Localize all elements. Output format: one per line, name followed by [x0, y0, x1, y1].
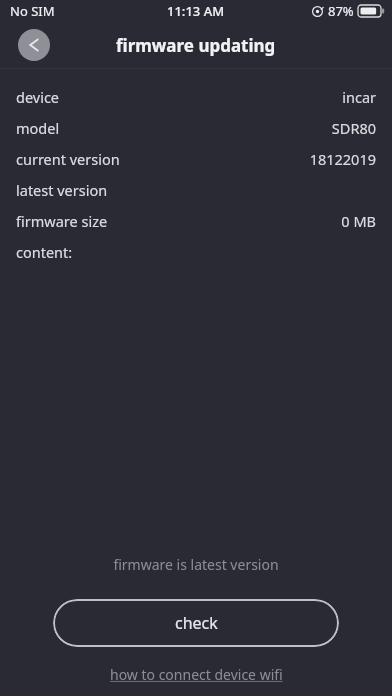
staticText: SDR80: [331, 118, 376, 138]
button[interactable]: device: [0, 81, 392, 112]
button[interactable]: firmware size: [0, 205, 392, 236]
button[interactable]: current version: [0, 143, 392, 174]
staticText: No SIM: [10, 2, 55, 20]
staticText: 18122019: [309, 149, 376, 169]
staticText: 11:13 AM: [167, 2, 225, 20]
staticText: firmware updating: [116, 34, 276, 57]
staticText: latest version: [16, 180, 108, 200]
staticText: incar: [342, 87, 376, 107]
staticText: firmware size: [16, 211, 108, 231]
staticText: 87%: [328, 2, 354, 20]
button[interactable]: Back: [18, 29, 50, 61]
staticText: device: [16, 87, 60, 107]
staticText: firmware is latest version: [0, 555, 392, 574]
button[interactable]: latest version: [0, 174, 392, 205]
button[interactable]: model: [0, 112, 392, 143]
staticText: content:: [16, 242, 73, 262]
staticText: check: [175, 612, 218, 634]
staticText: current version: [16, 149, 120, 169]
staticText: 0 MB: [341, 211, 376, 231]
button[interactable]: check: [53, 599, 339, 647]
staticText: how to connect device wifi: [110, 665, 283, 684]
button[interactable]: content:: [0, 236, 392, 267]
button[interactable]: how to connect device wifi: [106, 663, 287, 686]
staticText: model: [16, 118, 60, 138]
